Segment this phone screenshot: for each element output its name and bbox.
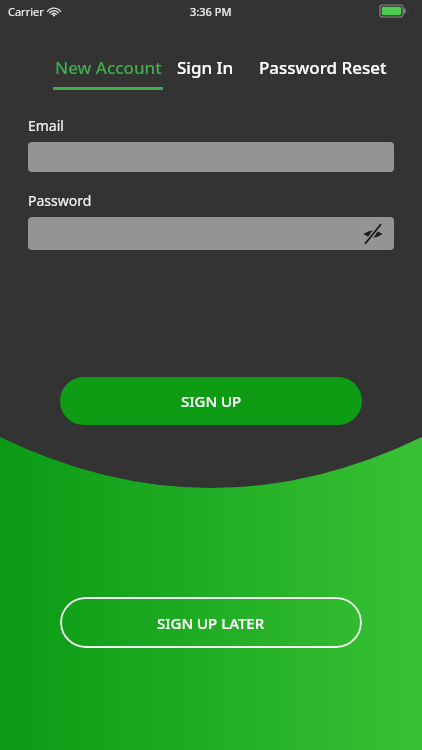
- button[interactable]: Sign In: [177, 56, 234, 79]
- button[interactable]: SIGN UP LATER: [60, 597, 362, 648]
- staticText: Password Reset: [259, 56, 387, 79]
- button[interactable]: Toggle password visibility: [28, 217, 394, 250]
- staticText: Password: [28, 191, 92, 210]
- button[interactable]: Toggle password visibility: [360, 221, 386, 247]
- staticText: 3:36 PM: [190, 4, 232, 19]
- staticText: New Account: [55, 56, 162, 79]
- staticText: Carrier: [8, 4, 44, 19]
- staticText: SIGN UP: [181, 391, 242, 411]
- staticText: Sign In: [177, 56, 234, 79]
- staticText: Email: [28, 116, 64, 135]
- button[interactable]: New Account: [53, 56, 163, 90]
- staticText: SIGN UP LATER: [157, 613, 265, 633]
- button[interactable]: SIGN UP: [60, 377, 362, 425]
- button[interactable]: Password Reset: [259, 56, 387, 79]
